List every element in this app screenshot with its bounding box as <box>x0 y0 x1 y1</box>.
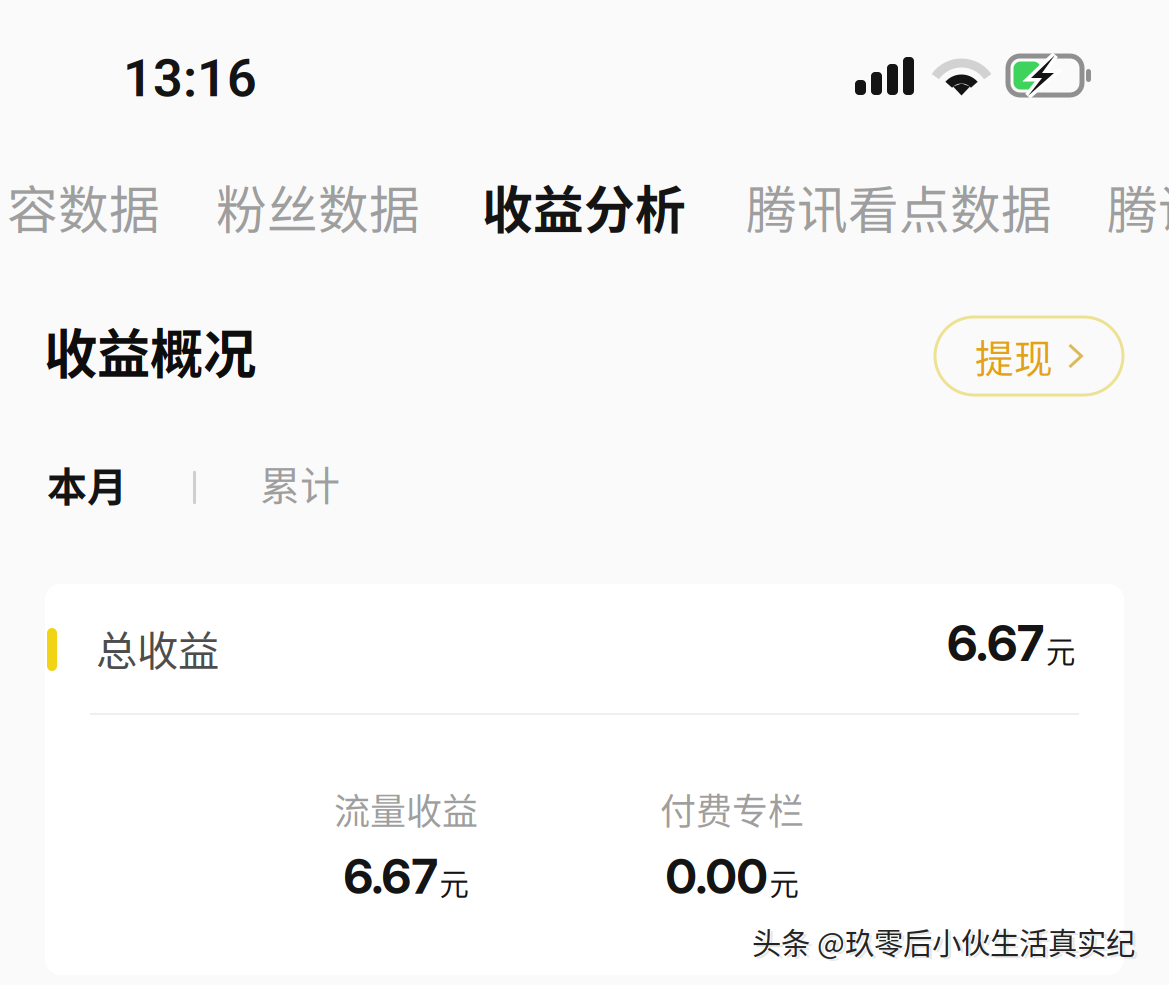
staticText: 元 <box>439 861 468 903</box>
button[interactable]: 腾讯 <box>1107 170 1169 243</box>
staticText: 收益分析 <box>482 170 686 243</box>
staticText: 6.67 <box>343 847 437 905</box>
button[interactable]: 容数据 <box>7 170 160 243</box>
staticText: 累计 <box>260 454 340 512</box>
button[interactable]: 提现 <box>935 317 1123 395</box>
button[interactable]: 粉丝数据 <box>216 170 420 243</box>
staticText: 13:16 <box>123 48 257 109</box>
staticText: 头条 @玖零后小伙生活真实纪 <box>752 920 1135 962</box>
staticText: 0.00 <box>665 847 767 905</box>
staticText: 腾讯 <box>1107 170 1169 243</box>
staticText: 腾讯看点数据 <box>746 170 1052 243</box>
button[interactable]: 收益分析 <box>482 170 686 243</box>
staticText: 粉丝数据 <box>216 170 420 243</box>
staticText: 元 <box>769 861 798 903</box>
button[interactable]: 本月 <box>47 455 127 513</box>
button[interactable]: 累计 <box>260 454 340 512</box>
staticText: 收益概况 <box>44 312 256 389</box>
staticText: 容数据 <box>7 170 160 243</box>
staticText: 付费专栏 <box>660 783 804 835</box>
staticText: 头条 @玖零后小伙生活真实纪 <box>755 922 1138 964</box>
staticText: 流量收益 <box>334 783 478 835</box>
staticText: 本月 <box>47 455 127 513</box>
staticText: 总收益 <box>96 618 219 678</box>
staticText: 提现 <box>975 328 1053 384</box>
button[interactable]: 腾讯看点数据 <box>746 170 1052 243</box>
staticText: 6.67 <box>947 613 1044 673</box>
staticText: 元 <box>1046 628 1075 671</box>
